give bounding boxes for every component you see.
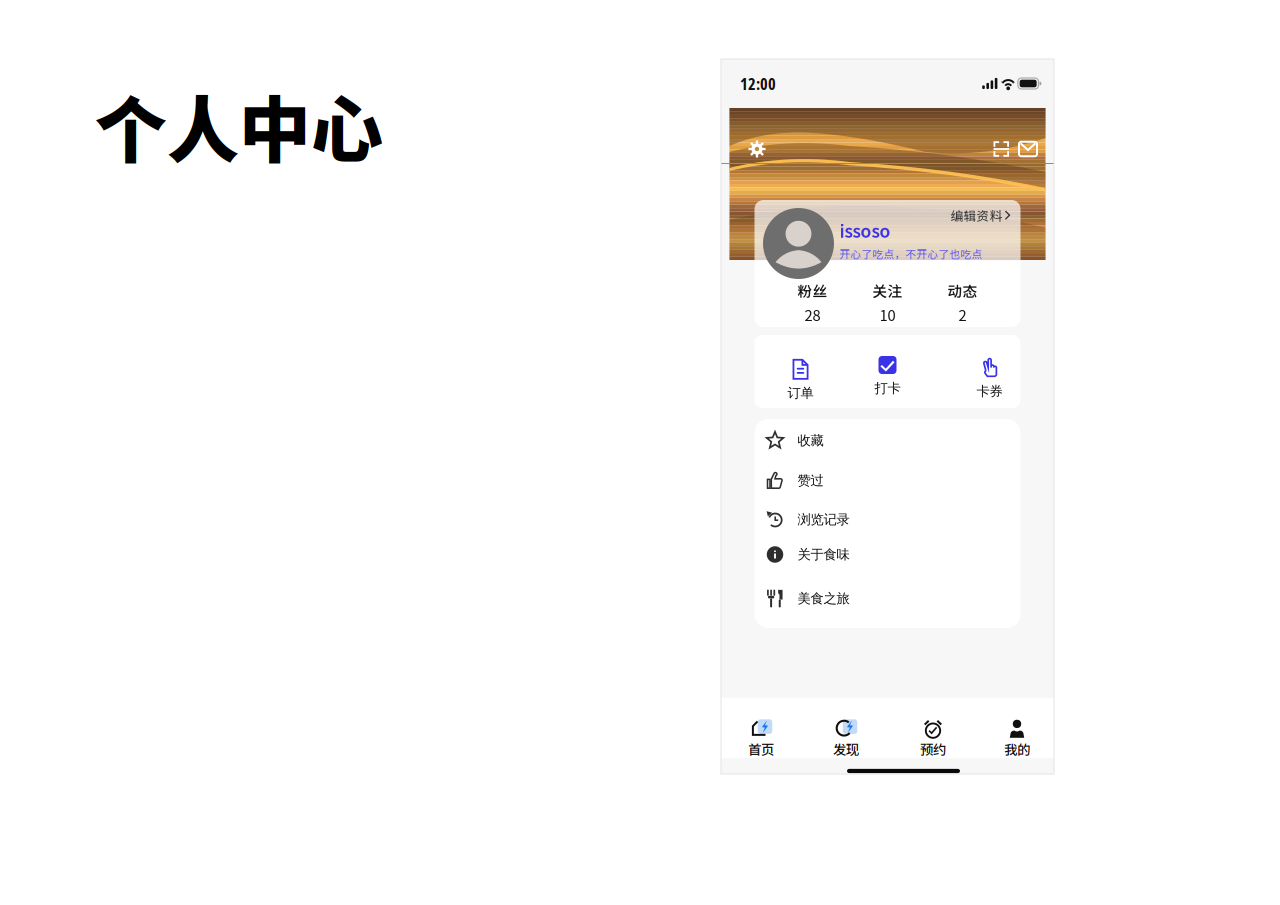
button[interactable]: 关注 xyxy=(871,280,903,325)
button[interactable]: 美食之旅 xyxy=(754,589,1020,608)
button[interactable]: 编辑资料 xyxy=(950,200,1020,227)
button[interactable]: 消息 xyxy=(1019,142,1037,156)
staticText: 28 xyxy=(804,304,820,325)
staticText: 发现 xyxy=(833,739,859,759)
button[interactable]: 收藏 xyxy=(754,430,1020,451)
button[interactable]: 动态 xyxy=(946,280,978,325)
button[interactable]: 扫一扫 xyxy=(993,141,1009,157)
staticText: 编辑资料 xyxy=(950,206,1002,224)
staticText: 关注 xyxy=(872,280,902,301)
staticText: 我的 xyxy=(1004,739,1030,759)
button[interactable]: 粉丝 xyxy=(796,280,828,325)
staticText: 开心了吃点，不开心了也吃点 xyxy=(839,246,982,261)
button[interactable]: 预约 xyxy=(911,692,955,764)
button[interactable]: 浏览记录 xyxy=(754,510,1020,529)
button[interactable]: 发现 xyxy=(824,692,868,764)
staticText: 订单 xyxy=(787,385,813,401)
staticText: 粉丝 xyxy=(797,280,827,301)
staticText: 赞过 xyxy=(797,472,823,489)
staticText: 10 xyxy=(879,304,895,325)
staticText: 关于食味 xyxy=(797,546,849,563)
staticText: 12:00 xyxy=(740,72,776,95)
button[interactable]: 卡券 xyxy=(969,358,1009,399)
staticText: 美食之旅 xyxy=(797,590,849,607)
staticText: 打卡 xyxy=(874,380,900,396)
staticText: 2 xyxy=(958,304,966,325)
staticText: 首页 xyxy=(748,739,774,759)
button[interactable]: 我的 xyxy=(995,692,1039,764)
button[interactable]: 赞过 xyxy=(754,471,1020,490)
button[interactable]: 首页 xyxy=(739,692,783,764)
staticText: 卡券 xyxy=(976,383,1002,399)
staticText: 浏览记录 xyxy=(797,511,849,528)
button[interactable]: 打卡 xyxy=(867,356,907,396)
staticText: 收藏 xyxy=(797,432,823,449)
staticText: 预约 xyxy=(920,739,946,759)
button[interactable]: 订单 xyxy=(780,359,820,401)
staticText: 动态 xyxy=(947,280,977,301)
button[interactable]: 设置 xyxy=(748,140,766,158)
staticText: 个人中心 xyxy=(95,73,383,177)
button[interactable]: 关于食味 xyxy=(754,545,1020,564)
staticText: issoso xyxy=(839,218,890,243)
